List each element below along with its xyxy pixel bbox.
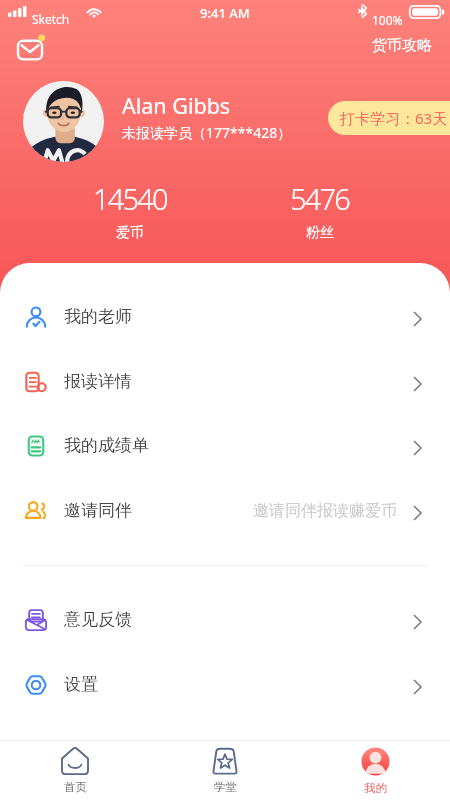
staticText: 爱币 bbox=[116, 224, 144, 242]
staticText: Alan Gibbs bbox=[122, 91, 231, 120]
button[interactable]: 设置 bbox=[0, 652, 450, 717]
staticText: 学堂 bbox=[214, 780, 237, 794]
staticText: 邀请同伴报读赚爱币 bbox=[253, 501, 397, 521]
staticText: 报读详情 bbox=[64, 371, 132, 392]
staticText: 设置 bbox=[64, 674, 98, 695]
button[interactable]: Profile photo bbox=[23, 81, 104, 162]
staticText: 意见反馈 bbox=[64, 609, 132, 630]
staticText: 打卡学习：63天 bbox=[340, 108, 448, 128]
button[interactable]: 我的 bbox=[300, 741, 450, 800]
staticText: 粉丝 bbox=[306, 224, 334, 242]
button[interactable]: Messages bbox=[18, 33, 48, 63]
staticText: Sketch bbox=[32, 11, 70, 27]
button[interactable]: 邀请同伴 bbox=[0, 478, 450, 543]
staticText: 14540 bbox=[93, 179, 167, 218]
staticText: 首页 bbox=[64, 780, 87, 794]
staticText: 5476 bbox=[290, 179, 350, 218]
button[interactable]: 意见反馈 bbox=[0, 587, 450, 652]
button[interactable]: 14540 bbox=[70, 179, 190, 247]
staticText: 我的老师 bbox=[64, 306, 132, 327]
button[interactable]: 我的成绩单 bbox=[0, 413, 450, 478]
button[interactable]: 首页 bbox=[0, 741, 150, 800]
button[interactable]: 5476 bbox=[260, 179, 380, 247]
button[interactable]: 货币攻略 bbox=[372, 36, 450, 55]
staticText: 我的 bbox=[364, 781, 387, 795]
staticText: 100% bbox=[372, 12, 403, 28]
staticText: 未报读学员（177***428） bbox=[122, 123, 292, 142]
staticText: 我的成绩单 bbox=[64, 435, 149, 456]
staticText: 邀请同伴 bbox=[64, 500, 132, 521]
button[interactable]: 学堂 bbox=[150, 741, 300, 800]
staticText: 货币攻略 bbox=[372, 36, 432, 55]
button[interactable]: 报读详情 bbox=[0, 349, 450, 414]
button[interactable]: 我的老师 bbox=[0, 284, 450, 349]
staticText: 9:41 AM bbox=[200, 4, 250, 22]
button[interactable]: 打卡学习：63天 bbox=[328, 101, 450, 135]
